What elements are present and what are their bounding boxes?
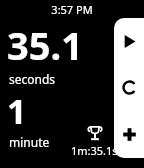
- button[interactable]: Best lap: [69, 124, 120, 159]
- button[interactable]: Start: [114, 18, 144, 64]
- staticText: 3:57 PM: [0, 2, 144, 17]
- button[interactable]: Lap: [114, 111, 144, 158]
- staticText: 35.1: [7, 19, 83, 71]
- button[interactable]: Reset: [114, 64, 144, 111]
- other: Best lap: [87, 125, 103, 141]
- staticText: minute: [9, 134, 50, 150]
- staticText: 1: [7, 88, 27, 134]
- staticText: seconds: [9, 71, 56, 87]
- staticText: 1m:35.1s: [71, 143, 118, 158]
